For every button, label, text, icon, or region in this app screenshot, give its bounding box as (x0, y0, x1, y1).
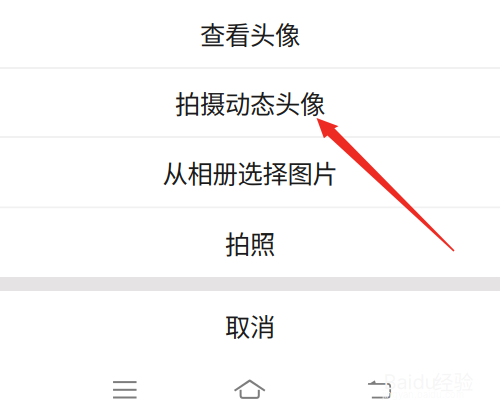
staticText: 查看头像 (200, 15, 300, 52)
button[interactable]: 拍摄动态头像 (0, 69, 500, 138)
button[interactable]: 取消 (0, 291, 500, 360)
staticText: jingyan.baidu.com (382, 389, 464, 400)
staticText: 拍摄动态头像 (175, 84, 325, 121)
button[interactable]: 从相册选择图片 (0, 138, 500, 208)
button[interactable]: Home (220, 364, 280, 414)
staticText: 拍照 (225, 224, 275, 261)
button[interactable]: Back (350, 364, 410, 414)
button[interactable]: 拍照 (0, 208, 500, 277)
staticText: 经验 (433, 367, 473, 396)
staticText: 取消 (225, 307, 275, 344)
button[interactable]: 查看头像 (0, 0, 500, 69)
button[interactable]: Recent apps (95, 365, 155, 415)
staticText: 从相册选择图片 (162, 154, 337, 191)
staticText: Baidu (383, 370, 436, 394)
